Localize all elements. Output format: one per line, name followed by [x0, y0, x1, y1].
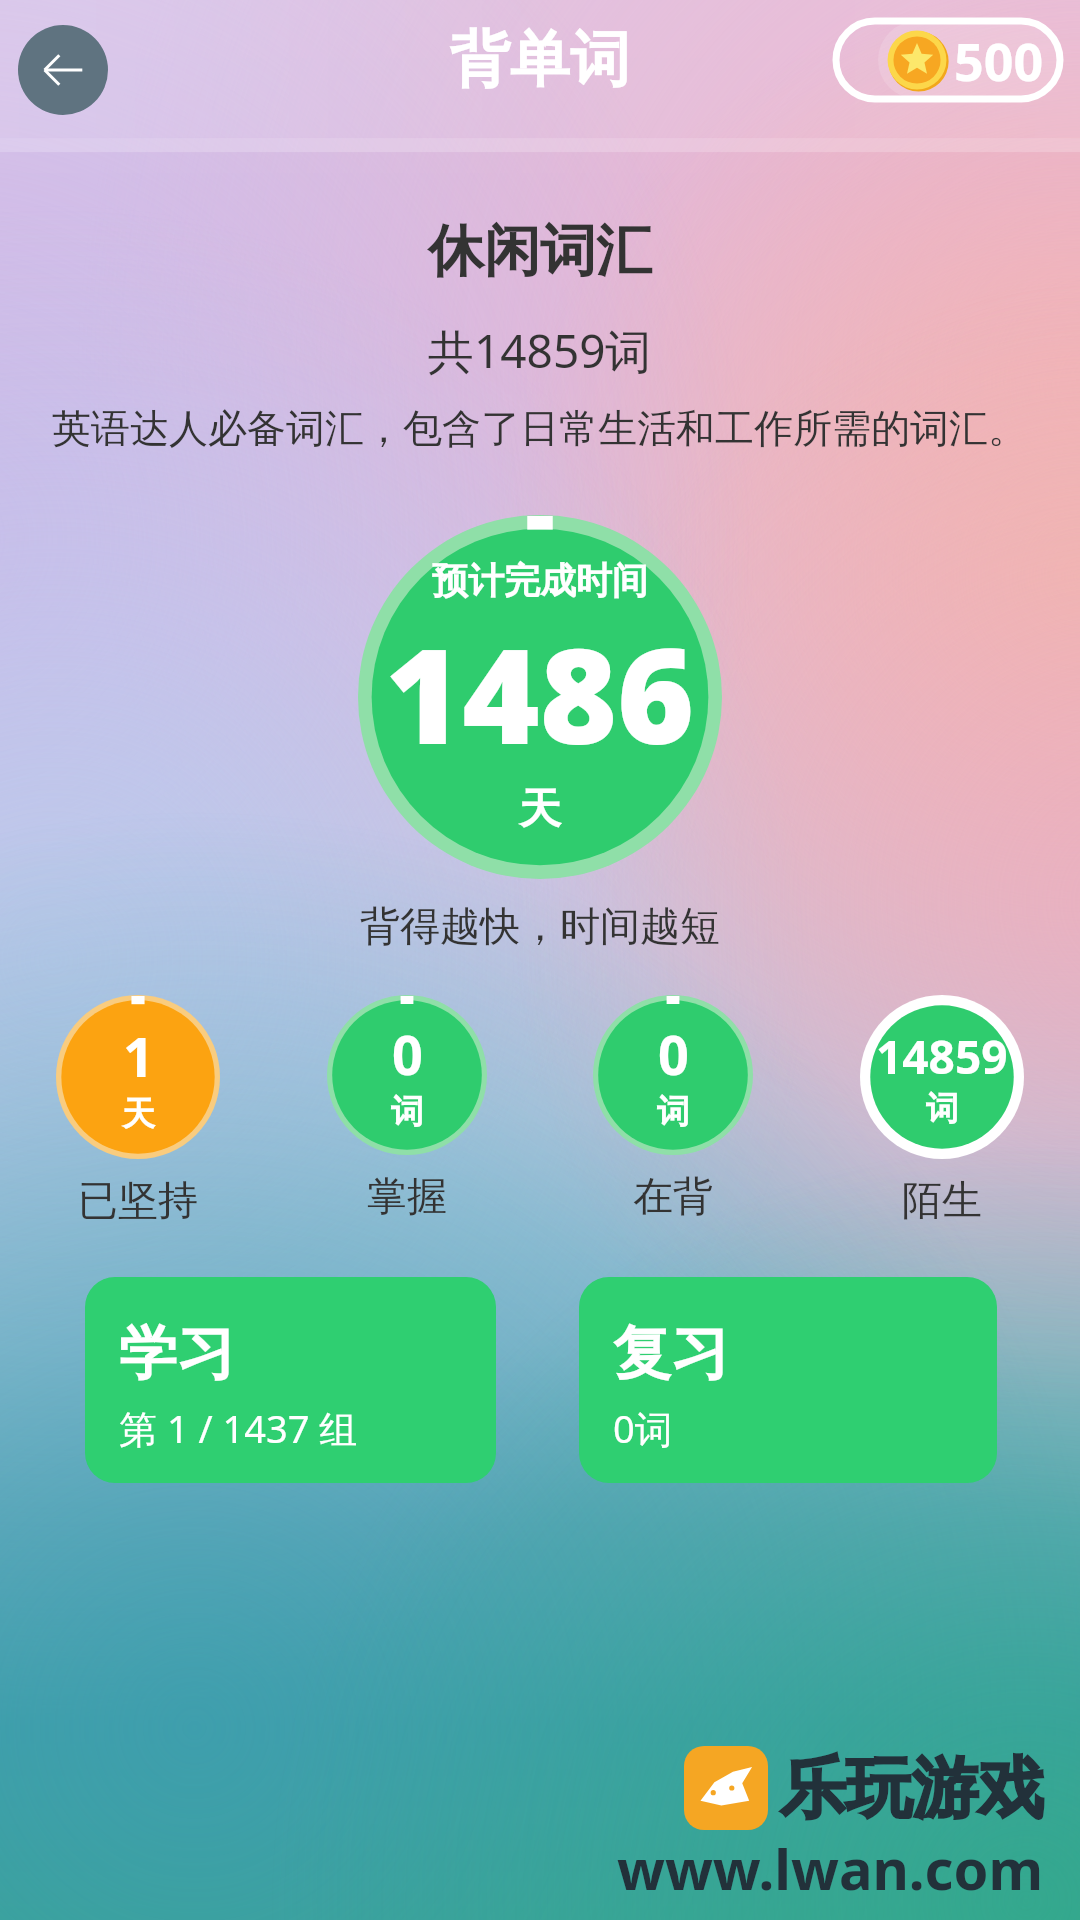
button[interactable]: 复习 — [579, 1277, 997, 1483]
staticText: 英语达人必备词汇，包含了日常生活和工作所需的词汇。 — [52, 404, 1028, 453]
staticText: 已坚持 — [78, 1175, 198, 1225]
button[interactable]: 0 — [327, 995, 487, 1221]
staticText: 0词 — [613, 1402, 673, 1454]
staticText: 14859 — [876, 1025, 1008, 1088]
staticText: 共14859词 — [428, 319, 652, 382]
staticText: 500 — [954, 25, 1044, 96]
staticText: 学习 — [119, 1317, 235, 1390]
staticText: 词 — [391, 1091, 424, 1133]
staticText: 复习 — [613, 1317, 729, 1390]
staticText: 在背 — [633, 1171, 713, 1221]
staticText: 预计完成时间 — [432, 558, 648, 603]
staticText: 第 1 / 1437 组 — [119, 1402, 358, 1454]
staticText: 天 — [519, 783, 561, 836]
staticText: 背单词 — [450, 22, 630, 98]
staticText: 乐玩游戏 — [780, 1747, 1044, 1830]
button[interactable]: 14859 — [860, 995, 1024, 1225]
staticText: 背得越快，时间越短 — [360, 901, 720, 951]
button[interactable]: 预计完成时间 — [358, 515, 722, 879]
staticText: 0 — [392, 1017, 423, 1091]
staticText: 陌生 — [902, 1175, 982, 1225]
staticText: 词 — [926, 1088, 959, 1130]
button[interactable]: 500 — [878, 21, 1060, 99]
button[interactable]: 0 — [593, 995, 753, 1221]
button[interactable]: 学习 — [85, 1277, 496, 1483]
staticText: 1 — [123, 1019, 154, 1093]
staticText: 天 — [122, 1093, 155, 1135]
staticText: 1486 — [385, 603, 695, 783]
staticText: 0 — [658, 1017, 689, 1091]
staticText: 掌握 — [367, 1171, 447, 1221]
staticText: 休闲词汇 — [428, 216, 652, 287]
staticText: www.lwan.com — [617, 1830, 1044, 1906]
button[interactable]: 1 — [56, 995, 220, 1225]
staticText: 词 — [657, 1091, 690, 1133]
button[interactable]: Back — [18, 25, 108, 115]
